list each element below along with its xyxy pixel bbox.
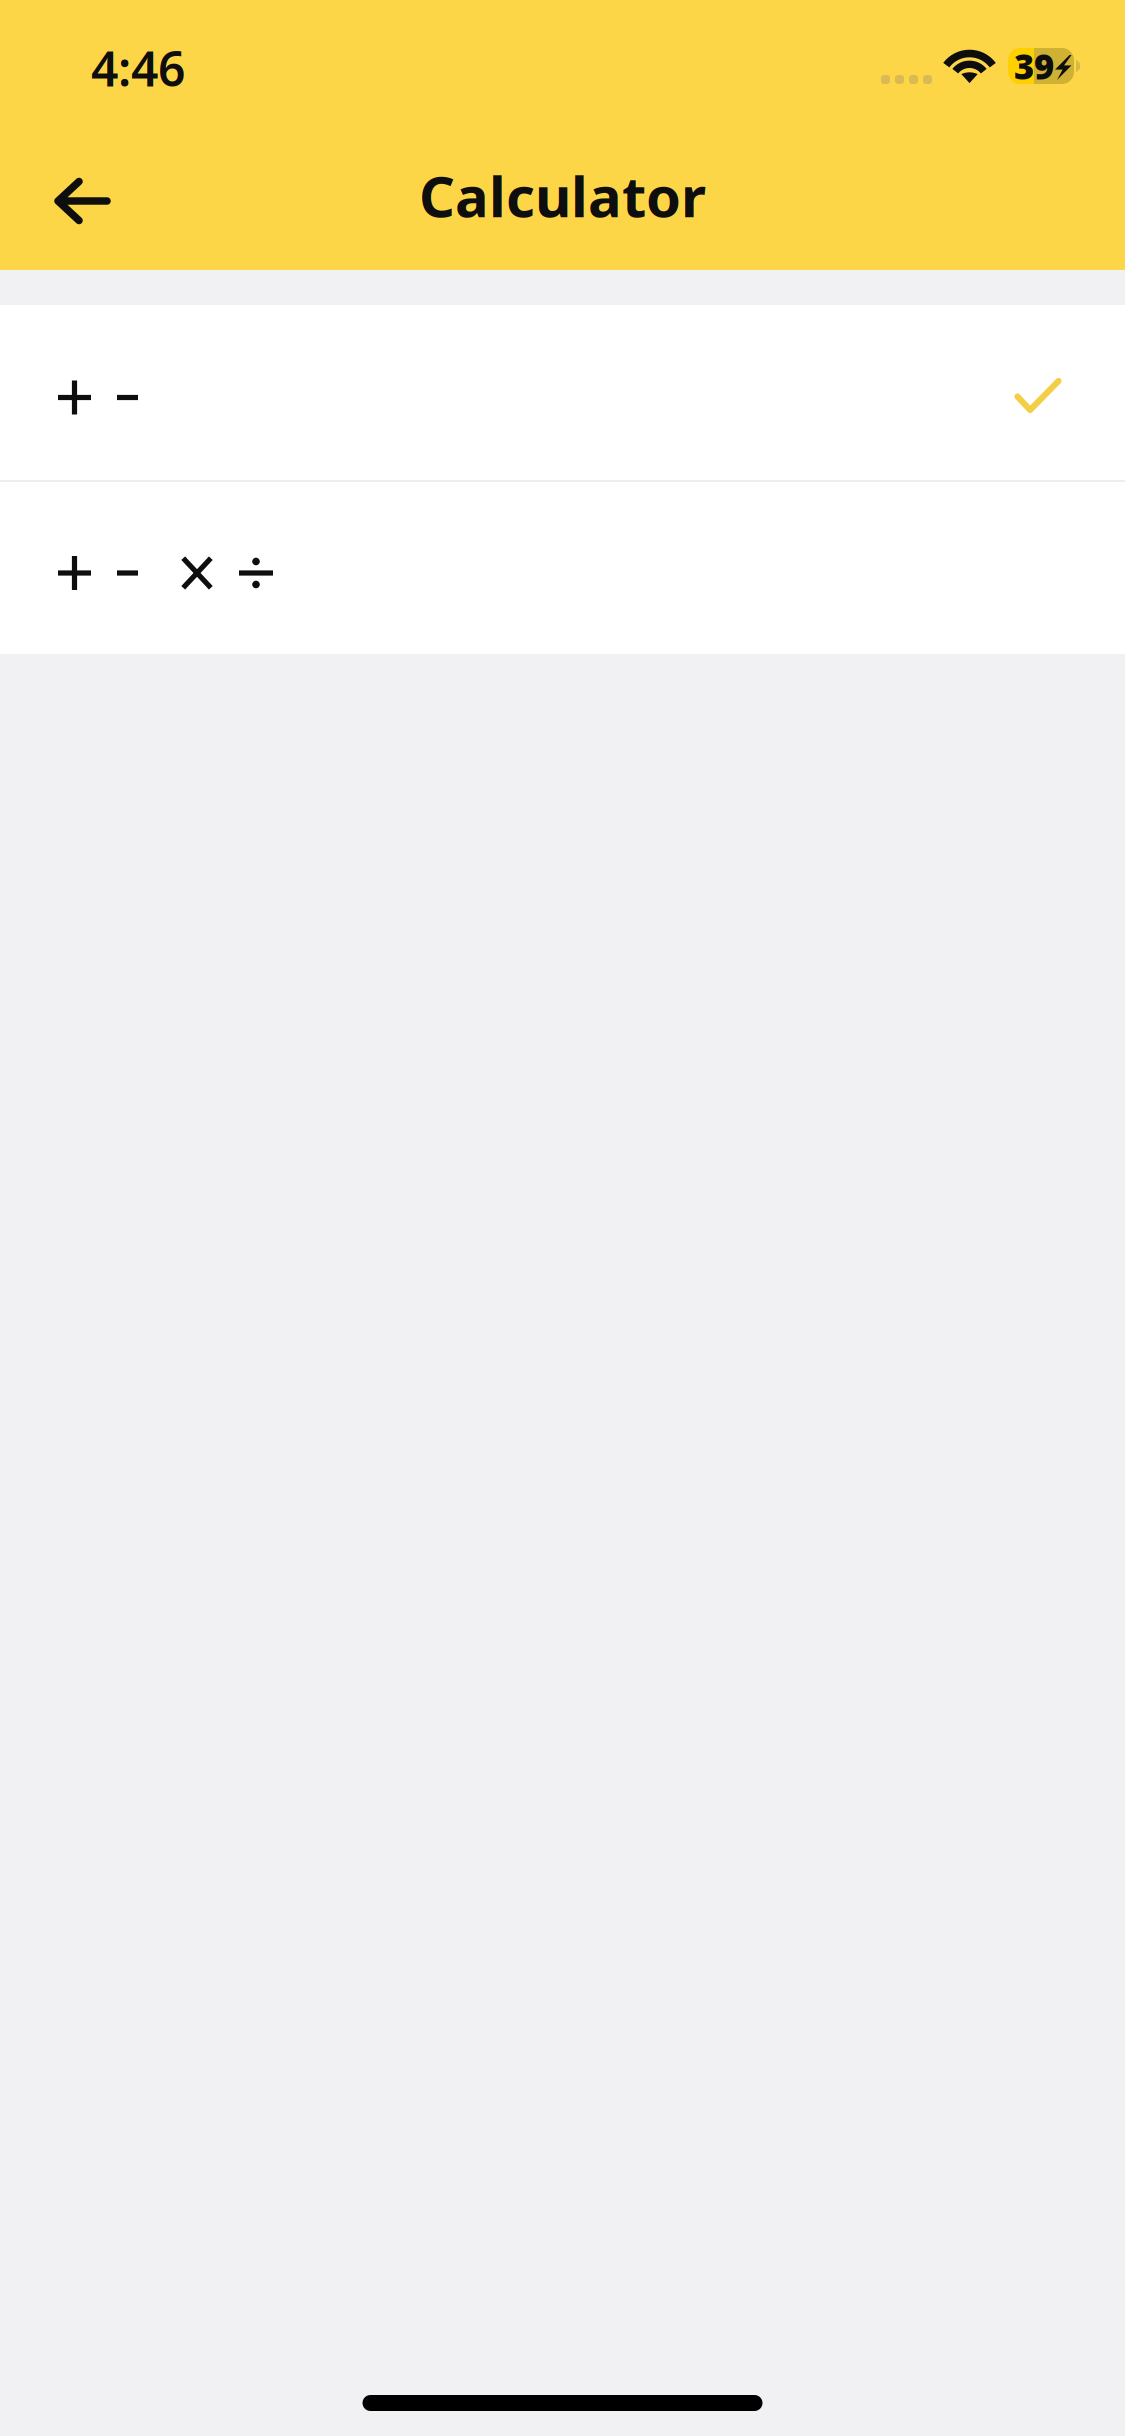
staticText: 4:46 (91, 36, 185, 100)
button[interactable]: Back (0, 147, 136, 254)
button[interactable]: Addition, subtraction, multiplication an… (0, 482, 1125, 654)
staticText: 39 (1014, 43, 1054, 89)
button[interactable]: Addition and subtraction, selected (0, 305, 1125, 480)
staticText: Calculator (419, 158, 706, 233)
